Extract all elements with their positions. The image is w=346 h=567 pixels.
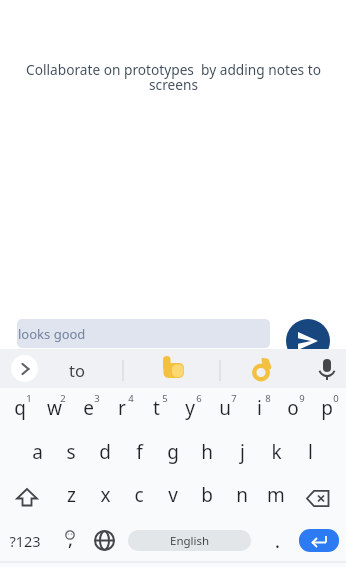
staticText: f	[136, 439, 143, 465]
button[interactable]	[159, 356, 185, 382]
staticText: ?123	[9, 531, 41, 551]
button[interactable]	[286, 319, 330, 363]
staticText: l	[308, 439, 313, 465]
button[interactable]: m	[259, 482, 293, 508]
button[interactable]: to	[57, 350, 97, 389]
staticText: 9	[299, 392, 305, 404]
button[interactable]: l	[293, 439, 327, 465]
button[interactable]: z	[54, 482, 88, 508]
button[interactable]: h	[190, 439, 224, 465]
button[interactable]: ?123	[5, 528, 45, 553]
staticText: looks good	[18, 325, 86, 343]
staticText: 3	[94, 392, 100, 404]
button[interactable]: looks good	[17, 319, 270, 348]
button[interactable]: u	[208, 395, 242, 421]
staticText: v	[168, 482, 178, 508]
button[interactable]: c	[122, 482, 156, 508]
staticText: ,	[68, 527, 73, 552]
staticText: 4	[128, 392, 134, 404]
staticText: English	[170, 533, 210, 549]
button[interactable]: t	[139, 395, 173, 421]
staticText: m	[267, 482, 285, 508]
staticText: 0	[333, 392, 339, 404]
staticText: Collaborate on prototypes by adding note…	[26, 60, 321, 94]
button[interactable]: g	[156, 439, 190, 465]
staticText: to	[69, 359, 85, 381]
staticText: p	[321, 395, 333, 421]
button[interactable]: v	[156, 482, 190, 508]
button[interactable]: English	[128, 530, 251, 551]
staticText: e	[83, 395, 94, 421]
button[interactable]	[8, 487, 46, 508]
button[interactable]: n	[225, 482, 259, 508]
button[interactable]	[248, 356, 276, 384]
staticText: s	[66, 439, 76, 465]
button[interactable]: w	[37, 395, 71, 421]
staticText: j	[240, 439, 245, 465]
staticText: t	[153, 395, 160, 421]
button[interactable]: x	[88, 482, 122, 508]
staticText: 5	[162, 392, 168, 404]
button[interactable]: d	[88, 439, 122, 465]
staticText: h	[201, 439, 213, 465]
button[interactable]	[299, 529, 339, 552]
staticText: n	[236, 482, 248, 508]
button[interactable]: s	[54, 439, 88, 465]
button[interactable]: k	[259, 439, 293, 465]
button[interactable]: q	[3, 395, 37, 421]
staticText: u	[219, 395, 231, 421]
button[interactable]: .	[264, 528, 290, 554]
staticText: o	[287, 395, 299, 421]
staticText: y	[185, 395, 195, 421]
button[interactable]	[313, 356, 341, 384]
button[interactable]: p	[310, 395, 344, 421]
button[interactable]: j	[225, 439, 259, 465]
staticText: b	[201, 482, 213, 508]
staticText: 7	[231, 392, 237, 404]
staticText: 1	[26, 392, 32, 404]
staticText: x	[100, 482, 111, 508]
button[interactable]	[299, 487, 337, 509]
staticText: 6	[196, 392, 202, 404]
button[interactable]: o	[276, 395, 310, 421]
button[interactable]: e	[71, 395, 105, 421]
button[interactable]	[11, 355, 38, 382]
staticText: a	[32, 439, 43, 465]
staticText: c	[134, 482, 144, 508]
staticText: 8	[265, 392, 271, 404]
staticText: .	[275, 529, 280, 554]
staticText: g	[167, 439, 179, 465]
staticText: w	[47, 395, 62, 421]
button[interactable]	[89, 528, 120, 553]
staticText: q	[14, 395, 26, 421]
button[interactable]: b	[190, 482, 224, 508]
staticText: k	[271, 439, 282, 465]
button[interactable]: f	[122, 439, 156, 465]
staticText: d	[99, 439, 111, 465]
staticText: i	[257, 395, 262, 421]
button[interactable]: i	[242, 395, 276, 421]
staticText: 2	[60, 392, 66, 404]
staticText: z	[67, 482, 76, 508]
staticText: r	[118, 395, 126, 421]
button[interactable]: ,	[55, 526, 85, 552]
button[interactable]: a	[20, 439, 54, 465]
button[interactable]: r	[105, 395, 139, 421]
button[interactable]: y	[173, 395, 207, 421]
